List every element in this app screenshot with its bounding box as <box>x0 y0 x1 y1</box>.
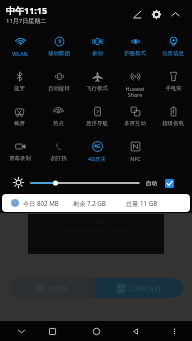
staticText: 蓝牙 <box>14 85 25 92</box>
button[interactable]: 截屏 <box>0 98 39 127</box>
staticText: 剩余 7.2 GB <box>73 199 106 207</box>
staticText: 屏幕录制 <box>9 155 31 162</box>
button[interactable]: 移动数据 <box>39 28 78 57</box>
button[interactable]: 护眼模式 <box>116 28 154 57</box>
button[interactable]: Hide <box>11 321 31 341</box>
staticText: 总量 11 GB <box>126 199 158 207</box>
button[interactable]: 今日 802 MB <box>2 194 190 212</box>
button[interactable]: 热点 <box>39 98 78 127</box>
button[interactable]: 蓝牙 <box>0 63 39 92</box>
staticText: 收款码 <box>48 285 68 293</box>
staticText: 自动 <box>146 180 157 187</box>
staticText: 二维码支付 <box>129 285 162 293</box>
button[interactable]: Back <box>125 321 145 341</box>
button[interactable]: 屏幕录制 <box>0 133 39 162</box>
button[interactable]: Home <box>86 321 106 341</box>
button[interactable]: 手电筒 <box>154 63 192 92</box>
staticText: 4G开关 <box>88 155 106 162</box>
button[interactable]: NFC <box>116 133 154 162</box>
staticText: 自动旋转 <box>48 85 70 92</box>
button[interactable]: 振动 <box>78 28 116 57</box>
button[interactable]: WLAN <box>0 28 39 57</box>
button[interactable]: 勿打扰 <box>39 133 78 162</box>
staticText: 11月7日星期二 <box>6 17 47 25</box>
staticText: 勿打扰 <box>50 155 67 162</box>
staticText: 位置信息 <box>162 50 184 57</box>
staticText: 多屏互动 <box>124 120 146 127</box>
button[interactable]: Collapse <box>166 5 184 23</box>
button[interactable]: Brightness <box>29 178 140 188</box>
staticText: 护眼模式 <box>124 50 146 57</box>
button[interactable]: 位置信息 <box>154 28 192 57</box>
staticText: 手电筒 <box>165 85 182 92</box>
button[interactable]: 多屏互动 <box>116 98 154 127</box>
button[interactable]: 飞行模式 <box>78 63 116 92</box>
button[interactable]: Edit <box>128 5 146 23</box>
button[interactable]: Settings <box>147 5 165 23</box>
button[interactable]: 4G <box>78 133 116 162</box>
staticText: NFC <box>130 155 141 162</box>
staticText: 振动 <box>92 50 103 57</box>
staticText: 悬浮导航 <box>86 120 108 127</box>
button[interactable]: Recents <box>42 321 62 341</box>
staticText: 超级省电 <box>162 120 184 127</box>
staticText: Huawei Share <box>125 85 145 98</box>
staticText: 中午11:15 <box>6 4 48 16</box>
staticText: 热点 <box>53 120 64 127</box>
staticText: 4G <box>94 143 101 150</box>
staticText: 飞行模式 <box>86 85 108 92</box>
button[interactable]: 二维码支付 <box>95 278 183 298</box>
button[interactable]: 自动旋转 <box>39 63 78 92</box>
button[interactable]: Huawei Share <box>116 63 154 98</box>
staticText: WLAN <box>12 50 28 57</box>
button[interactable]: 超级省电 <box>154 98 192 127</box>
button[interactable]: Auto brightness <box>165 179 174 188</box>
staticText: 截屏 <box>14 120 25 127</box>
button[interactable]: More <box>164 321 184 341</box>
staticText: 今日 802 MB <box>23 199 59 207</box>
button[interactable]: 悬浮导航 <box>78 98 116 127</box>
staticText: 移动数据 <box>48 50 70 57</box>
